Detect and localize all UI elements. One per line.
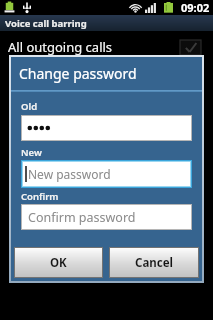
staticText: Change password [19, 64, 137, 83]
button[interactable]: Cancel [110, 248, 198, 277]
button[interactable]: New password [23, 162, 190, 186]
staticText: Voice call barring [5, 17, 87, 30]
staticText: New password [28, 166, 111, 182]
staticText: OK [50, 255, 67, 271]
staticText: New [21, 146, 42, 159]
other: All outgoing calls checkbox [180, 40, 201, 55]
staticText: Confirm password [28, 209, 136, 226]
staticText: Old [21, 100, 38, 113]
button[interactable]: Old password [22, 116, 191, 140]
staticText: Confirm [21, 190, 59, 203]
staticText: 09:02 [181, 0, 210, 15]
staticText: All outgoing calls [8, 38, 113, 56]
staticText: Cancel [135, 255, 173, 271]
button[interactable]: All outgoing calls [0, 34, 213, 60]
button[interactable]: OK [15, 248, 102, 277]
button[interactable]: Confirm password [22, 205, 191, 229]
